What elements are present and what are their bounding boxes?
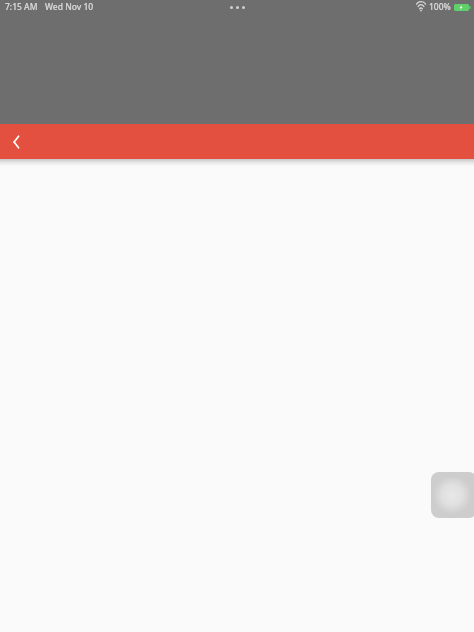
staticText: Wed Nov 10: [45, 1, 94, 13]
button[interactable]: Back: [0, 125, 34, 159]
staticText: 100%: [429, 1, 451, 13]
staticText: 7:15 AM: [5, 1, 38, 13]
button[interactable]: Action: [431, 472, 474, 518]
